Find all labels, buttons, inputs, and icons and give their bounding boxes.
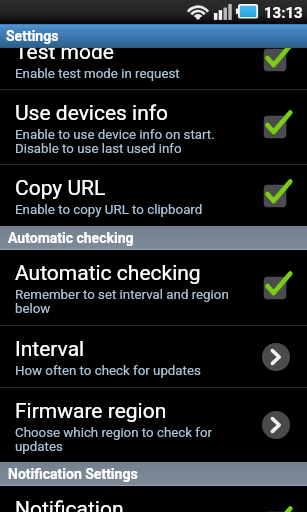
button[interactable]: Copy URL [0,165,307,226]
staticText: Notification Settings [8,466,138,482]
staticText: Automatic checking [15,261,201,286]
staticText: Enable test mode in request [15,66,180,81]
other: Checkbox, checked [260,181,294,211]
button[interactable]: Test mode [0,48,307,89]
staticText: Use devices info [15,101,169,126]
other: Mobile signal [213,3,232,20]
button[interactable]: Use devices info [0,90,307,164]
other: Checkbox, checked [260,112,294,142]
other: Checkbox, checked [260,48,294,75]
staticText: Firmware region [15,399,167,424]
staticText: How often to check for updates [15,363,201,378]
button[interactable]: Settings [0,24,307,48]
button[interactable]: Interval [0,326,307,387]
staticText: Copy URL [15,176,106,201]
staticText: Choose which region to check for updates [15,425,212,454]
staticText: Notification [15,497,124,512]
staticText: Remember to set interval and region belo… [15,287,229,316]
other: Battery [235,3,260,20]
staticText: Automatic checking [8,230,134,246]
staticText: Enable to copy URL to clipboard [15,202,203,217]
staticText: Settings [6,28,59,44]
button[interactable]: Notification [0,486,307,512]
button[interactable]: Firmware region [0,388,307,462]
other: Open [260,410,294,440]
staticText: Enable to use device info on start. Disa… [15,127,215,156]
button[interactable]: Automatic checking [0,250,307,325]
staticText: Interval [15,337,85,362]
staticText: 13:13 [264,4,303,22]
other: Checkbox, checked [260,273,294,303]
other: Wi-Fi signal [187,3,209,20]
staticText: Test mode [15,48,114,65]
other: Open [260,342,294,372]
other: Checkbox, checked [260,508,294,512]
